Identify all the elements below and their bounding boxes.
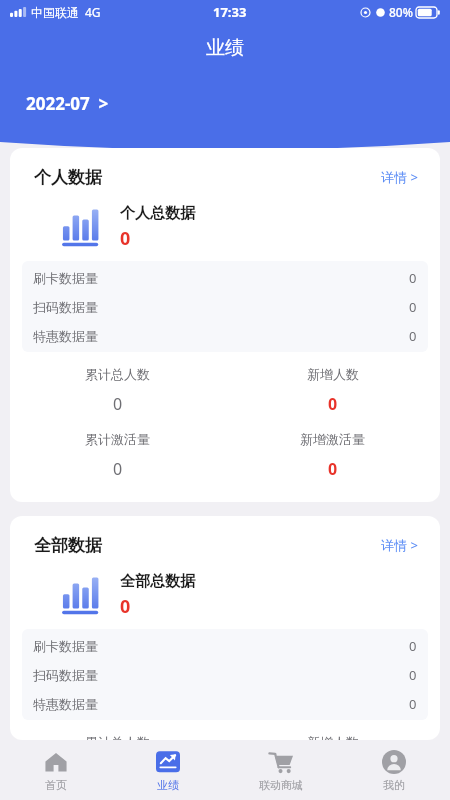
staticText: 2022-07 > <box>26 92 109 115</box>
staticText: 个人总数据 <box>120 204 195 223</box>
staticText: 0 <box>409 327 417 345</box>
other: 业绩 <box>156 750 180 774</box>
staticText: 0 <box>328 458 338 480</box>
button[interactable]: 首页 <box>0 742 112 800</box>
staticText: 详情 > <box>381 168 418 186</box>
staticText: 刷卡数据量 <box>33 638 98 654</box>
other: 我的 <box>382 750 406 774</box>
staticText: 0 <box>113 393 123 415</box>
button[interactable]: 详情 > <box>375 530 424 560</box>
staticText: 0 <box>409 666 417 684</box>
staticText: 个人数据 <box>34 167 102 188</box>
staticText: 全部数据 <box>34 535 102 556</box>
button[interactable]: 我的 <box>337 742 450 800</box>
staticText: 0 <box>409 298 417 316</box>
staticText: 0 <box>120 594 131 619</box>
other: 联动商城 <box>269 750 293 774</box>
staticText: 全部总数据 <box>120 572 195 591</box>
staticText: 累计总人数 <box>85 734 150 740</box>
staticText: 扫码数据量 <box>33 299 98 315</box>
staticText: 4G <box>85 4 101 20</box>
staticText: 0 <box>113 458 123 480</box>
staticText: 我的 <box>383 778 405 792</box>
staticText: 刷卡数据量 <box>33 270 98 286</box>
staticText: 新增激活量 <box>300 431 365 447</box>
staticText: 中国联通 <box>31 5 79 20</box>
staticText: 新增人数 <box>307 366 359 382</box>
staticText: 0 <box>328 393 338 415</box>
staticText: 0 <box>409 695 417 713</box>
staticText: 累计激活量 <box>85 431 150 447</box>
staticText: 特惠数据量 <box>33 696 98 712</box>
staticText: 0 <box>120 226 131 251</box>
staticText: 业绩 <box>206 36 244 60</box>
staticText: 累计总人数 <box>85 366 150 382</box>
staticText: 联动商城 <box>259 778 303 792</box>
staticText: 0 <box>409 637 417 655</box>
staticText: 特惠数据量 <box>33 328 98 344</box>
staticText: 扫码数据量 <box>33 667 98 683</box>
staticText: 业绩 <box>157 778 179 792</box>
staticText: 新增人数 <box>307 734 359 740</box>
staticText: 首页 <box>45 778 67 792</box>
button[interactable]: 详情 > <box>375 162 424 192</box>
other: 首页 <box>44 750 68 774</box>
button[interactable]: 业绩 <box>112 742 224 800</box>
staticText: 0 <box>409 269 417 287</box>
button[interactable]: 2022-07 > <box>22 88 113 119</box>
staticText: 80% <box>389 4 413 20</box>
button[interactable]: 联动商城 <box>224 742 337 800</box>
staticText: 详情 > <box>381 536 418 554</box>
staticText: 17:33 <box>213 3 247 21</box>
